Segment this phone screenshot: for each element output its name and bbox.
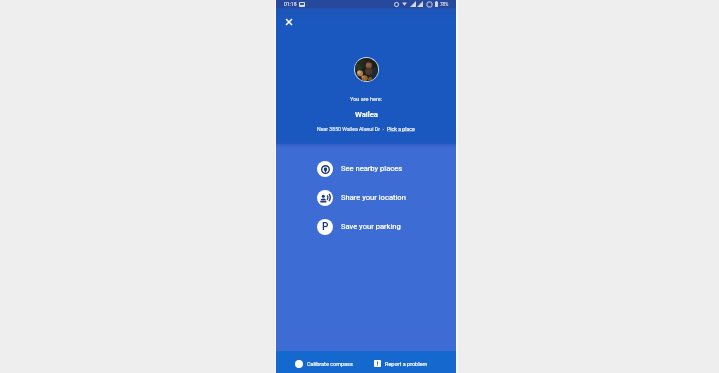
button[interactable]: See nearby places [276,154,456,183]
staticText: Near 3850 Wailea Alanui Dr · [317,126,387,132]
staticText: P [322,221,329,233]
button[interactable]: Share your location [276,183,456,212]
staticText: You are here: [350,96,383,103]
staticText: See nearby places [341,164,403,173]
button[interactable]: Calibrate compass [295,360,353,368]
staticText: 01:18 [284,1,297,7]
staticText: 78% [440,2,449,7]
button[interactable]: Close [280,13,297,30]
staticText: Report a problem [385,361,428,367]
button[interactable]: Report a problem [374,360,428,367]
staticText: Save your parking [341,222,401,231]
button[interactable]: Pick a place [387,126,415,132]
staticText: Share your location [341,193,406,202]
staticText: Wailea [355,110,378,119]
staticText: Calibrate compass [307,361,353,367]
button[interactable]: P [276,212,456,241]
